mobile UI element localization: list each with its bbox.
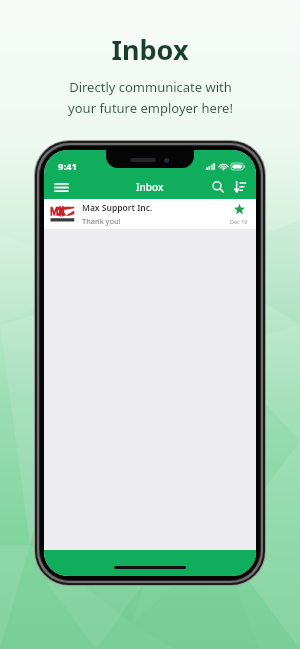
staticText: Dec 19 <box>230 218 248 225</box>
staticText: your future employer here! <box>68 99 233 117</box>
staticText: Max Support Inc. <box>82 202 153 214</box>
button[interactable]: Menu <box>50 176 72 198</box>
button[interactable]: Max Support Inc. <box>44 199 256 229</box>
button[interactable]: Sort <box>229 176 251 198</box>
staticText: Directly communicate with <box>69 78 232 96</box>
staticText: 9:41 <box>58 160 77 173</box>
button[interactable]: Starred <box>234 204 245 215</box>
staticText: Inbox <box>111 31 189 68</box>
button[interactable]: Search <box>207 176 229 198</box>
staticText: Thank you! <box>82 216 121 226</box>
staticText: Inbox <box>136 180 164 194</box>
